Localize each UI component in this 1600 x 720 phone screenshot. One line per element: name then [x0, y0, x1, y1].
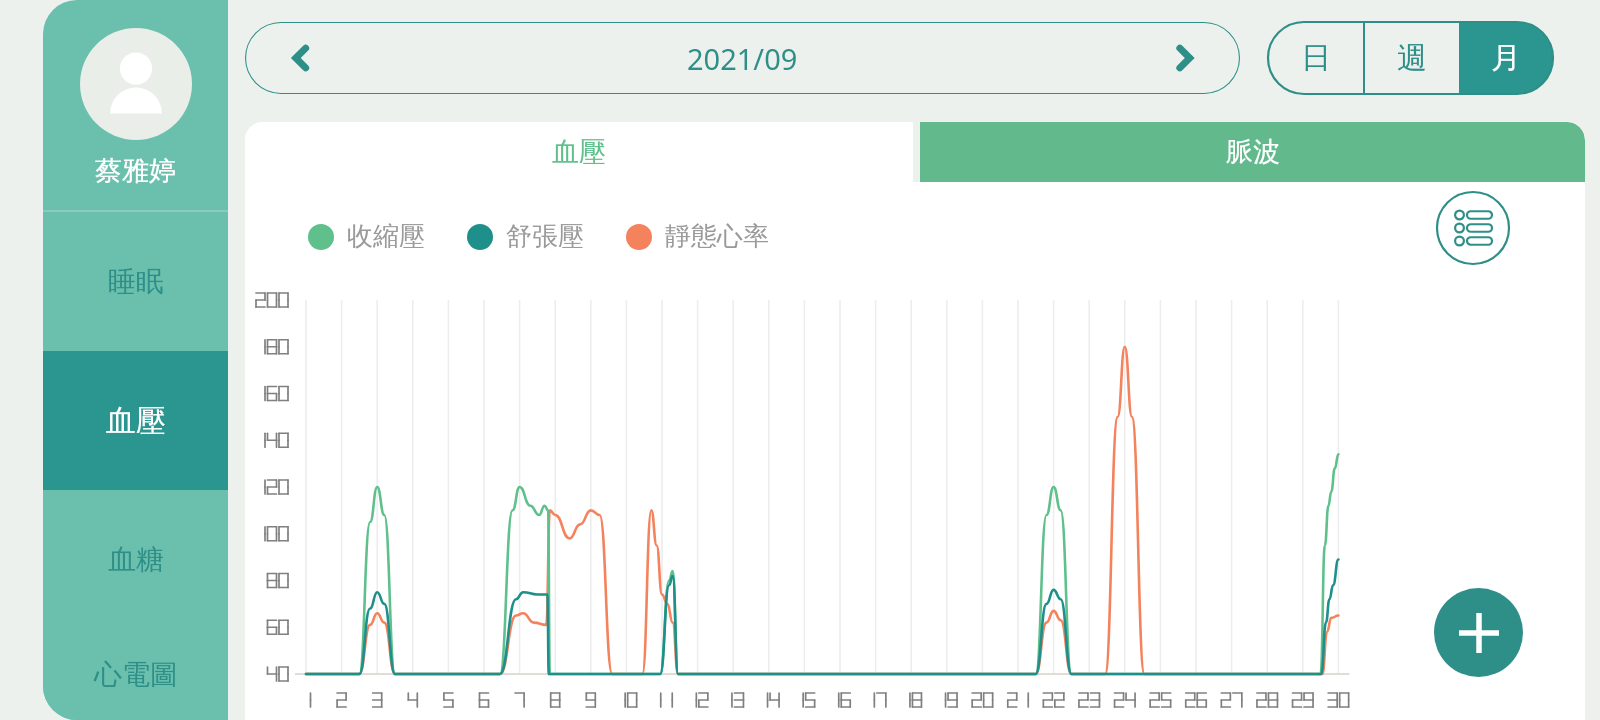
button[interactable]: Previous month	[245, 22, 1240, 94]
button[interactable]: 靜態心率	[626, 220, 769, 253]
staticText: 血糖	[108, 542, 164, 577]
staticText: 血壓	[552, 135, 606, 169]
staticText: 睡眠	[108, 264, 164, 299]
button[interactable]: 心電圖	[43, 629, 228, 720]
button[interactable]: 脈波	[920, 122, 1585, 182]
button[interactable]: Previous month	[279, 36, 323, 80]
button[interactable]: 血壓	[245, 122, 913, 182]
button[interactable]: 日	[1268, 22, 1363, 94]
staticText: 週	[1397, 39, 1427, 77]
button[interactable]: Next month	[1162, 36, 1206, 80]
button[interactable]: 血糖	[43, 490, 228, 629]
staticText: 靜態心率	[665, 220, 769, 253]
button[interactable]: 舒張壓	[467, 220, 584, 253]
staticText: 2021/09	[687, 39, 798, 78]
staticText: 血壓	[106, 402, 166, 440]
staticText: 月	[1491, 39, 1521, 77]
button[interactable]: 週	[1365, 22, 1459, 94]
button[interactable]: List view	[1435, 190, 1511, 266]
button[interactable]: Add record	[1434, 588, 1523, 677]
staticText: 蔡雅婷	[95, 154, 176, 188]
staticText: 舒張壓	[506, 220, 584, 253]
button[interactable]: 睡眠	[43, 212, 228, 351]
button[interactable]: 月	[1459, 22, 1553, 94]
staticText: 心電圖	[94, 657, 178, 692]
staticText: 日	[1301, 39, 1331, 77]
button[interactable]: 血壓	[43, 351, 228, 490]
button[interactable]: 收縮壓	[308, 220, 425, 253]
staticText: 收縮壓	[347, 220, 425, 253]
button[interactable]: Profile photo	[80, 28, 192, 140]
staticText: 脈波	[1226, 135, 1280, 169]
